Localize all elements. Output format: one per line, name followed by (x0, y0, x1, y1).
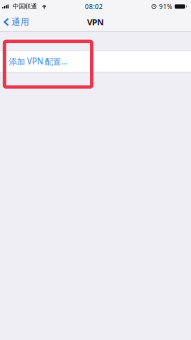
button[interactable]: 添加 VPN 配置... (0, 51, 191, 72)
button[interactable]: 通用 (0, 12, 34, 32)
staticText: 91% (159, 2, 172, 11)
staticText: 通用 (12, 16, 30, 28)
staticText: 添加 VPN 配置... (9, 56, 67, 67)
staticText: 中国联通 (13, 3, 37, 10)
staticText: 08:02 (85, 2, 103, 11)
staticText: VPN (87, 16, 104, 28)
